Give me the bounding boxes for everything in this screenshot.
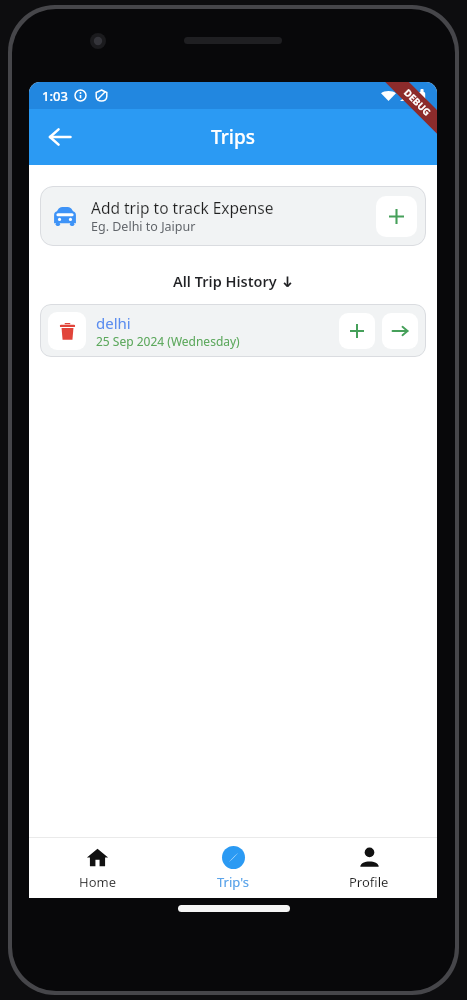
button[interactable]: Profile: [301, 838, 437, 898]
staticText: Add trip to track Expense: [91, 197, 274, 218]
staticText: Eg. Delhi to Jaipur: [91, 218, 196, 235]
staticText: Trips: [211, 124, 255, 150]
staticText: All Trip History: [173, 271, 277, 291]
staticText: Profile: [349, 873, 389, 891]
button[interactable]: Trip's: [165, 838, 301, 898]
button[interactable]: Open trip: [382, 313, 418, 349]
button[interactable]: Add trip to track Expense: [40, 186, 426, 246]
button[interactable]: Delete trip: [40, 304, 426, 357]
staticText: 1:03: [42, 87, 68, 105]
button[interactable]: Home: [29, 838, 165, 898]
button[interactable]: Back: [37, 114, 83, 160]
staticText: DEBUG: [401, 86, 434, 119]
staticText: delhi: [96, 313, 131, 333]
staticText: Home: [79, 873, 116, 891]
staticText: Trip's: [217, 873, 249, 891]
button[interactable]: Delete trip: [48, 312, 86, 350]
button[interactable]: Add expense: [339, 313, 375, 349]
button[interactable]: Add trip: [376, 196, 417, 237]
staticText: 25 Sep 2024 (Wednesday): [96, 333, 240, 349]
